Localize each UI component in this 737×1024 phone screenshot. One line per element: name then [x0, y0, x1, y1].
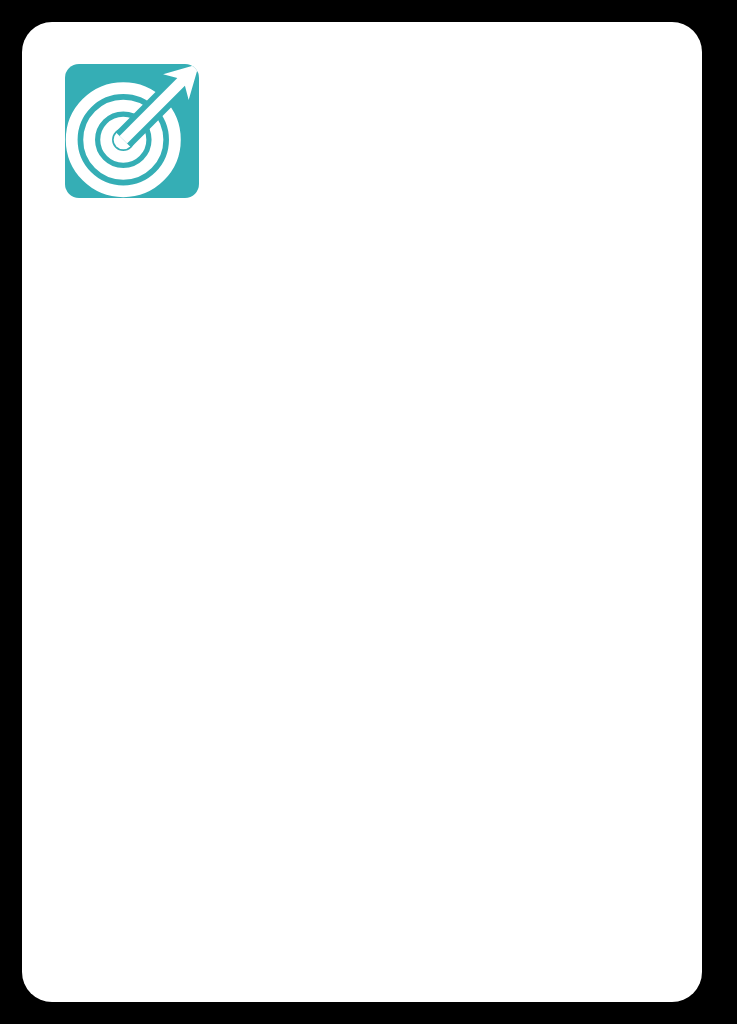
button[interactable]: Target app icon [65, 64, 199, 198]
